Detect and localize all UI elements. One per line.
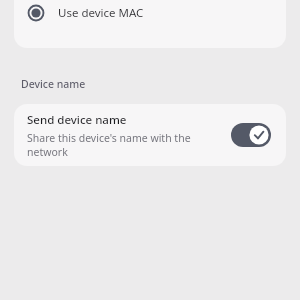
staticText: Send device name	[27, 112, 127, 128]
staticText: Use device MAC	[58, 5, 144, 21]
button[interactable]: Use device MAC, selected	[14, 0, 286, 48]
staticText: Share this device's name with the networ…	[27, 131, 227, 159]
staticText: Device name	[21, 77, 86, 91]
button[interactable]: Send device name, on	[231, 123, 271, 147]
other: Use device MAC, selected	[27, 4, 45, 22]
button[interactable]: Send device name	[14, 104, 286, 166]
